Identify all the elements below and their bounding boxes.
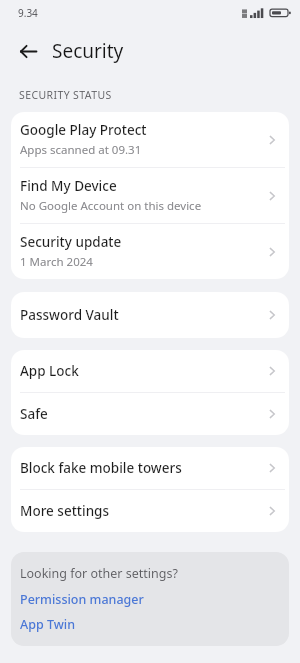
button[interactable]: App Twin <box>20 616 76 633</box>
button[interactable]: App Lock <box>11 350 289 392</box>
staticText: 1 March 2024 <box>20 254 93 270</box>
button[interactable]: Security update <box>11 224 289 279</box>
staticText: 9.34 <box>18 6 38 20</box>
staticText: No Google Account on this device <box>20 198 202 214</box>
staticText: Password Vault <box>20 306 119 324</box>
button[interactable]: Back <box>14 37 42 65</box>
button[interactable]: Google Play Protect <box>11 112 289 167</box>
button[interactable]: Safe <box>11 393 289 435</box>
staticText: Find My Device <box>20 177 117 195</box>
staticText: Google Play Protect <box>20 121 147 139</box>
button[interactable]: Block fake mobile towers <box>11 447 289 489</box>
staticText: Security <box>52 38 124 64</box>
staticText: Safe <box>20 405 48 423</box>
staticText: Security update <box>20 233 122 251</box>
button[interactable]: Find My Device <box>11 168 289 223</box>
button[interactable]: More settings <box>11 490 289 532</box>
staticText: SECURITY STATUS <box>19 88 112 102</box>
staticText: Block fake mobile towers <box>20 459 182 477</box>
button[interactable]: Password Vault <box>11 292 289 338</box>
staticText: More settings <box>20 502 110 520</box>
staticText: App Lock <box>20 362 79 380</box>
staticText: Looking for other settings? <box>20 565 178 582</box>
button[interactable]: Permission manager <box>20 591 144 608</box>
staticText: Apps scanned at 09.31 <box>20 142 142 158</box>
